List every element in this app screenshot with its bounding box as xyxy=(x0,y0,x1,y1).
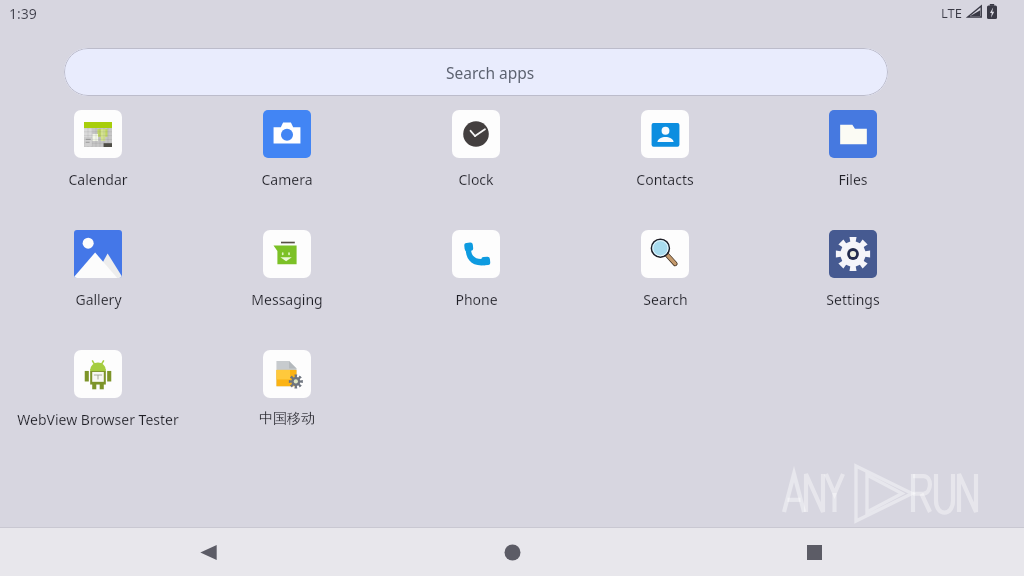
staticText: Contacts xyxy=(636,170,694,189)
staticText: Messaging xyxy=(251,290,323,309)
staticText: Calendar xyxy=(68,170,128,189)
staticText: WebView Browser Tester xyxy=(17,410,179,429)
button[interactable]: Back xyxy=(184,532,232,572)
button[interactable]: Search xyxy=(570,224,760,314)
staticText: Gallery xyxy=(75,290,122,309)
button[interactable]: Settings xyxy=(758,224,948,314)
button[interactable]: Contacts xyxy=(570,104,760,194)
staticText: Search xyxy=(643,290,688,309)
button[interactable]: Files xyxy=(758,104,948,194)
button[interactable]: 中国移动 xyxy=(192,344,382,434)
button[interactable]: Phone xyxy=(381,224,571,314)
staticText: Phone xyxy=(455,290,498,309)
staticText: Clock xyxy=(458,170,494,189)
button[interactable]: Recent apps xyxy=(790,532,838,572)
button[interactable]: Messaging xyxy=(192,224,382,314)
button[interactable]: Gallery xyxy=(3,224,193,314)
staticText: Search apps xyxy=(446,62,535,83)
button[interactable]: Search apps xyxy=(64,48,888,96)
staticText: Camera xyxy=(261,170,313,189)
button[interactable]: Camera xyxy=(192,104,382,194)
staticText: Files xyxy=(838,170,868,189)
button[interactable]: Clock xyxy=(381,104,571,194)
button[interactable]: Calendar xyxy=(3,104,193,194)
button[interactable]: Home xyxy=(488,532,536,572)
staticText: 中国移动 xyxy=(259,410,315,428)
staticText: LTE xyxy=(941,4,963,22)
staticText: Settings xyxy=(826,290,880,309)
staticText: 1:39 xyxy=(9,4,37,23)
button[interactable]: WebView Browser Tester xyxy=(3,344,193,434)
